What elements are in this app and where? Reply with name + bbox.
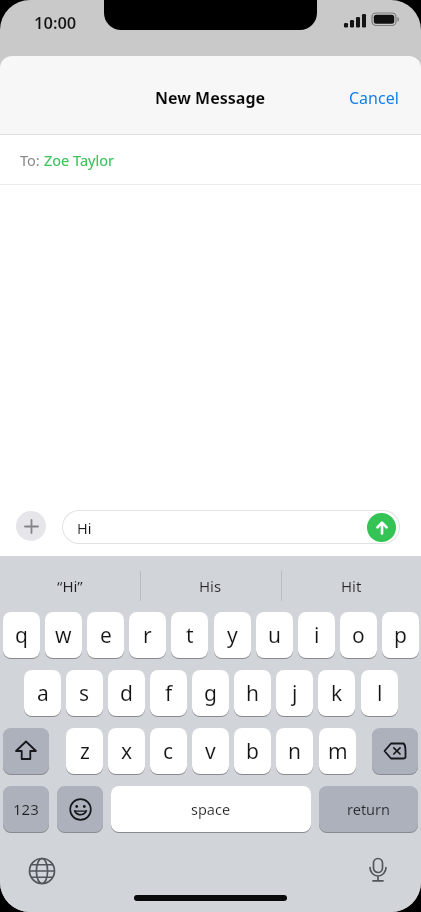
staticText: x xyxy=(121,737,133,766)
button[interactable]: f xyxy=(150,670,187,716)
staticText: e xyxy=(100,621,112,650)
button[interactable]: space xyxy=(111,786,311,832)
staticText: l xyxy=(377,679,383,708)
staticText: New Message xyxy=(155,87,266,109)
button[interactable]: e xyxy=(87,612,124,658)
staticText: Hit xyxy=(341,576,362,596)
staticText: r xyxy=(143,621,152,650)
button[interactable]: m xyxy=(319,728,356,774)
staticText: s xyxy=(79,679,90,708)
staticText: p xyxy=(394,621,407,650)
staticText: q xyxy=(15,621,28,650)
button[interactable]: x xyxy=(108,728,145,774)
staticText: n xyxy=(288,737,301,766)
staticText: i xyxy=(314,621,320,650)
staticText: “Hi” xyxy=(57,576,83,596)
staticText: m xyxy=(328,737,348,766)
staticText: c xyxy=(163,737,174,766)
staticText: u xyxy=(268,621,281,650)
staticText: Hi xyxy=(77,518,92,538)
staticText: k xyxy=(331,679,343,708)
button[interactable]: j xyxy=(276,670,313,716)
button[interactable]: a xyxy=(24,670,61,716)
button[interactable]: n xyxy=(276,728,313,774)
staticText: f xyxy=(165,679,173,708)
button[interactable]: w xyxy=(45,612,82,658)
button[interactable]: v xyxy=(192,728,229,774)
button[interactable]: t xyxy=(171,612,208,658)
staticText: v xyxy=(205,737,216,766)
button[interactable] xyxy=(57,786,103,832)
staticText: y xyxy=(227,621,238,650)
staticText: 123 xyxy=(13,799,39,819)
button[interactable]: o xyxy=(340,612,377,658)
staticText: space xyxy=(191,799,231,819)
button[interactable]: Hit xyxy=(281,564,421,608)
button[interactable]: l xyxy=(361,670,398,716)
button[interactable] xyxy=(16,511,46,541)
staticText: g xyxy=(204,679,217,708)
button[interactable]: p xyxy=(382,612,419,658)
button[interactable] xyxy=(367,513,396,542)
button[interactable] xyxy=(3,728,49,774)
staticText: Zoe Taylor xyxy=(44,150,114,170)
button[interactable]: r xyxy=(129,612,166,658)
button[interactable]: s xyxy=(66,670,103,716)
staticText: To: xyxy=(20,150,44,170)
button[interactable] xyxy=(62,510,400,544)
button[interactable]: d xyxy=(108,670,145,716)
button[interactable]: return xyxy=(319,786,418,832)
button[interactable] xyxy=(364,857,392,885)
button[interactable]: g xyxy=(192,670,229,716)
button[interactable]: y xyxy=(214,612,251,658)
staticText: a xyxy=(37,679,49,708)
staticText: d xyxy=(120,679,133,708)
button[interactable]: His xyxy=(140,564,280,608)
button[interactable]: i xyxy=(298,612,335,658)
button[interactable]: “Hi” xyxy=(0,564,140,608)
button[interactable]: q xyxy=(3,612,40,658)
staticText: o xyxy=(352,621,365,650)
button[interactable]: b xyxy=(234,728,271,774)
button[interactable]: k xyxy=(318,670,355,716)
staticText: h xyxy=(246,679,259,708)
button[interactable]: z xyxy=(66,728,103,774)
button[interactable]: 123 xyxy=(3,786,49,832)
button[interactable]: Cancel xyxy=(339,81,409,115)
button[interactable]: u xyxy=(256,612,293,658)
staticText: b xyxy=(246,737,259,766)
button[interactable] xyxy=(372,728,418,774)
button[interactable]: h xyxy=(234,670,271,716)
staticText: return xyxy=(347,799,391,819)
staticText: w xyxy=(55,621,72,650)
staticText: z xyxy=(80,737,90,766)
staticText: His xyxy=(199,576,222,596)
button[interactable] xyxy=(28,857,56,885)
staticText: Cancel xyxy=(349,87,399,109)
staticText: t xyxy=(186,621,194,650)
button[interactable]: c xyxy=(150,728,187,774)
staticText: 10:00 xyxy=(34,11,77,33)
staticText: j xyxy=(292,679,298,708)
